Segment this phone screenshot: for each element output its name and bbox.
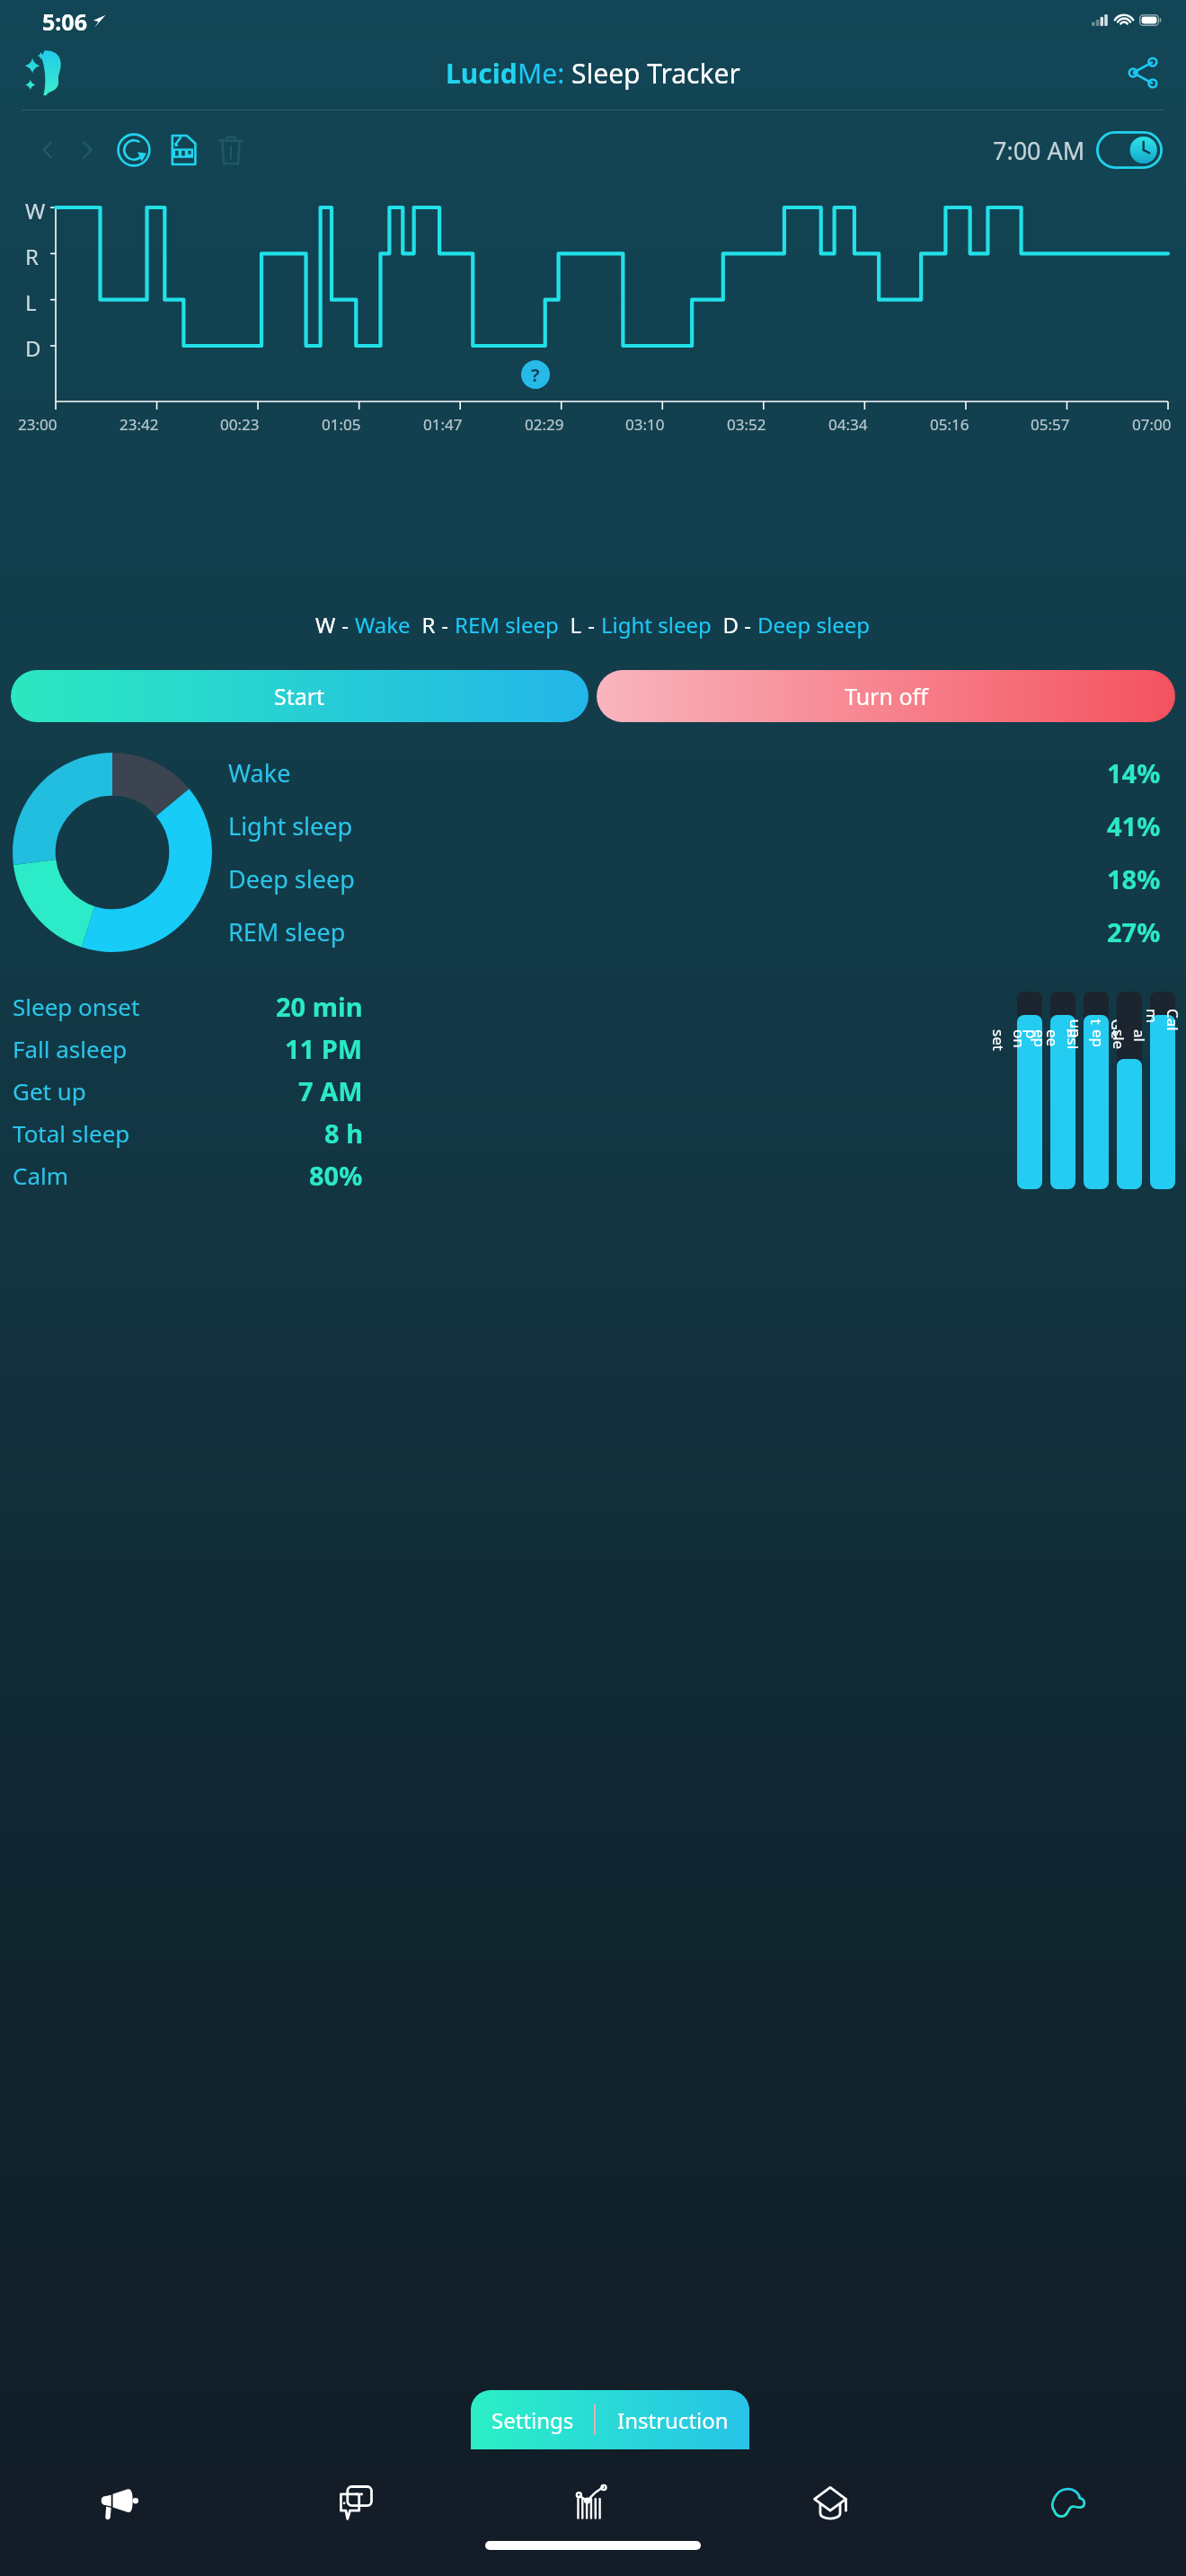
staticText: 01:47 (423, 414, 463, 435)
staticText: ? (531, 363, 540, 387)
staticText: 00:23 (220, 414, 260, 435)
button[interactable]: Share (1123, 53, 1163, 93)
staticText: 01:05 (322, 414, 361, 435)
staticText: REM sleep (455, 610, 559, 640)
button[interactable] (1117, 1059, 1142, 1189)
staticText: Sleep Tracker (571, 55, 740, 92)
staticText: 03:52 (727, 414, 766, 435)
staticText: 23:00 (18, 414, 58, 435)
staticText: 14% (1107, 755, 1161, 790)
button[interactable]: Refresh (113, 129, 155, 171)
staticText: - (436, 610, 455, 640)
button[interactable]: Help (521, 360, 550, 389)
button[interactable]: Statistics (474, 2464, 712, 2541)
staticText: Light sleep (601, 610, 712, 640)
button[interactable]: Learn (712, 2464, 949, 2541)
button[interactable]: Instruction (596, 2390, 749, 2449)
button[interactable]: Messages (237, 2464, 474, 2541)
staticText: W (25, 196, 46, 225)
button[interactable]: LucidMe logo (23, 48, 74, 98)
staticText: Sleep onset (13, 991, 140, 1022)
staticText: Sleep Quality (23, 2505, 219, 2545)
staticText: 80% (309, 1158, 363, 1193)
button[interactable]: Sleep (949, 2464, 1186, 2541)
staticText: Wake (355, 610, 411, 640)
staticText: Fall asleep (1022, 1029, 1104, 1054)
staticText: 03:10 (625, 414, 665, 435)
staticText: - (336, 610, 355, 640)
button[interactable]: Log (162, 129, 203, 171)
button[interactable] (1050, 1015, 1075, 1189)
staticText: Instruction (617, 2405, 729, 2435)
staticText: R (25, 242, 39, 271)
staticText: Start (274, 681, 325, 711)
staticText: - (582, 610, 601, 640)
staticText: 04:34 (828, 414, 868, 435)
staticText: 7:00 AM (993, 134, 1085, 167)
staticText: R (411, 610, 436, 640)
staticText: 41% (1107, 808, 1161, 843)
button[interactable]: 7:00 AM (993, 131, 1163, 169)
button[interactable]: Start (11, 670, 589, 722)
staticText: 18% (1107, 861, 1161, 896)
staticText: Deep sleep (228, 862, 355, 895)
staticText: Sleep onset (988, 1029, 1071, 1054)
staticText: 05:57 (1031, 414, 1070, 435)
staticText: L (559, 610, 582, 640)
staticText: 27% (1107, 914, 1161, 949)
staticText: 02:29 (525, 414, 564, 435)
button[interactable] (1150, 1015, 1175, 1189)
staticText: Wake (228, 756, 291, 790)
staticText: W (315, 610, 336, 640)
button[interactable]: Announcements (0, 2464, 237, 2541)
staticText: 8 h (324, 1116, 363, 1151)
staticText: REM sleep (228, 915, 346, 948)
staticText: D (712, 610, 739, 640)
button[interactable] (1017, 1015, 1042, 1189)
button[interactable]: Previous (31, 133, 65, 167)
staticText: Deep sleep (757, 610, 871, 640)
button[interactable]: Settings (471, 2390, 594, 2449)
staticText: 23:42 (119, 414, 159, 435)
staticText: - (739, 610, 757, 640)
staticText: Total sleep (13, 1117, 130, 1149)
staticText: Get up (13, 1075, 86, 1107)
button[interactable]: Turn off (597, 670, 1175, 722)
button[interactable] (1084, 1015, 1109, 1189)
staticText: Total sleep (1088, 1029, 1171, 1054)
button[interactable]: Next (70, 133, 104, 167)
staticText: Turn off (845, 681, 928, 711)
staticText: Lucid (446, 55, 518, 92)
staticText: 11 PM (285, 1031, 363, 1066)
staticText: Get up (1065, 1019, 1127, 1044)
staticText: Calm (1142, 1009, 1183, 1034)
staticText: 5:06 (42, 6, 87, 36)
staticText: 7 AM (298, 1073, 363, 1108)
staticText: Calm (13, 1160, 69, 1191)
staticText: Settings (491, 2405, 574, 2435)
staticText: D (25, 333, 41, 363)
staticText: 07:00 (1132, 414, 1172, 435)
staticText: 05:16 (930, 414, 969, 435)
staticText: L (25, 287, 37, 317)
staticText: 20 min (276, 989, 363, 1024)
button[interactable]: Alarm toggle (1096, 131, 1163, 169)
staticText: Fall asleep (13, 1033, 128, 1064)
staticText: Me: (518, 55, 565, 92)
button[interactable]: Delete (210, 129, 252, 171)
staticText: Light sleep (228, 809, 353, 842)
